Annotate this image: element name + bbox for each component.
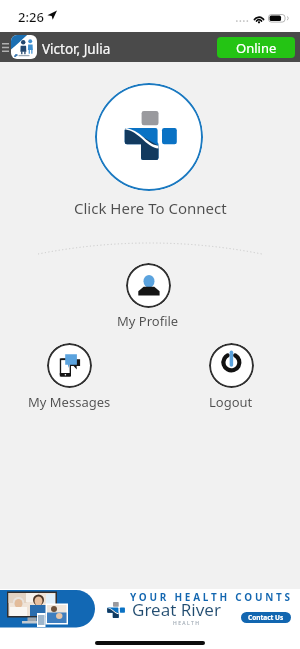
button[interactable]: Open navigation menu (0, 32, 12, 62)
button[interactable]: Great River Health advertisement (0, 589, 300, 629)
button[interactable]: My Messages (24, 343, 114, 411)
staticText: Contact Us (248, 613, 284, 622)
button[interactable]: My Profile (103, 263, 193, 330)
button[interactable]: Online (217, 37, 295, 58)
staticText: Logout (209, 393, 253, 411)
staticText: Online (236, 39, 277, 57)
button[interactable]: Connect (95, 83, 203, 191)
button[interactable]: Logout (186, 343, 276, 411)
button[interactable]: Contact Us (241, 612, 291, 623)
staticText: My Profile (117, 312, 179, 330)
staticText: Victor, Julia (42, 40, 111, 58)
button[interactable]: Click Here To Connect (0, 198, 300, 218)
staticText: YOUR HEALTH COUNTS (130, 590, 293, 604)
staticText: My Messages (28, 393, 111, 411)
staticText: Great River (132, 598, 221, 621)
staticText: HEALTH (173, 620, 201, 627)
staticText: Click Here To Connect (74, 198, 227, 218)
staticText: 2:26 (18, 8, 44, 26)
